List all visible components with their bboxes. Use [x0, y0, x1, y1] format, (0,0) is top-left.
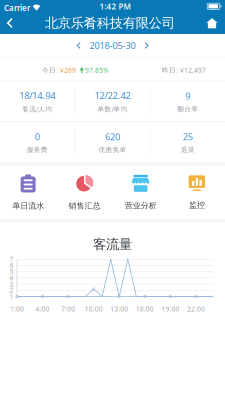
- staticText: 销售汇总: [68, 201, 100, 211]
- staticText: 10:00: [85, 305, 103, 313]
- staticText: 今日:: [42, 66, 58, 75]
- staticText: 4: [9, 273, 13, 282]
- staticText: 18/14.94: [19, 89, 55, 102]
- staticText: 1: [9, 292, 13, 301]
- button[interactable]: 销售汇总: [56, 166, 112, 219]
- staticText: 0: [35, 130, 40, 143]
- staticText: 2018-05-30: [89, 39, 135, 52]
- button[interactable]: 620: [75, 122, 150, 162]
- staticText: 22:00: [187, 305, 205, 313]
- staticText: 监控: [189, 200, 205, 210]
- staticText: 97.85%: [85, 66, 109, 75]
- staticText: 客流量: [93, 236, 132, 252]
- button[interactable]: 12/22.42: [75, 81, 150, 121]
- staticText: 3: [9, 280, 13, 289]
- staticText: ¥269: [58, 66, 76, 75]
- staticText: 6: [9, 261, 13, 270]
- staticText: 营业分析: [125, 200, 157, 210]
- button[interactable]: 9: [150, 81, 225, 121]
- staticText: 620: [105, 130, 120, 143]
- staticText: 16:00: [136, 305, 154, 313]
- staticText: 优惠免单: [98, 146, 126, 154]
- staticText: 12/22.42: [94, 89, 130, 102]
- staticText: 7:00: [61, 305, 75, 313]
- staticText: 1:42 PM: [99, 1, 130, 12]
- staticText: 4:00: [36, 305, 50, 313]
- staticText: 5: [9, 267, 13, 276]
- button[interactable]: Back: [0, 12, 21, 34]
- staticText: 1:00: [10, 305, 24, 313]
- staticText: 北京乐肴科技有限公司: [45, 15, 175, 31]
- staticText: 25: [183, 130, 193, 143]
- staticText: 翻台率: [177, 105, 198, 113]
- staticText: 退菜: [181, 146, 195, 154]
- button[interactable]: 25: [150, 122, 225, 162]
- staticText: 9: [185, 90, 190, 102]
- staticText: 2: [9, 286, 13, 295]
- button[interactable]: 18/14.94: [0, 81, 74, 121]
- staticText: ¥12,497: [178, 66, 206, 75]
- button[interactable]: Home: [198, 12, 225, 34]
- staticText: 昨日:: [162, 66, 178, 75]
- button[interactable]: 营业分析: [112, 166, 169, 219]
- staticText: 13:00: [110, 305, 128, 313]
- staticText: 19:00: [161, 305, 179, 313]
- staticText: 客流/人均: [22, 105, 52, 114]
- button[interactable]: Previous day: [71, 37, 85, 54]
- button[interactable]: Next day: [139, 37, 153, 54]
- staticText: 单数/单均: [97, 105, 127, 114]
- staticText: 7: [9, 255, 13, 264]
- staticText: Carrier: [4, 2, 30, 13]
- button[interactable]: 0: [0, 122, 74, 162]
- staticText: 单日流水: [12, 201, 44, 211]
- button[interactable]: 监控: [169, 166, 225, 219]
- staticText: 服务费: [27, 146, 48, 154]
- button[interactable]: 单日流水: [0, 166, 56, 219]
